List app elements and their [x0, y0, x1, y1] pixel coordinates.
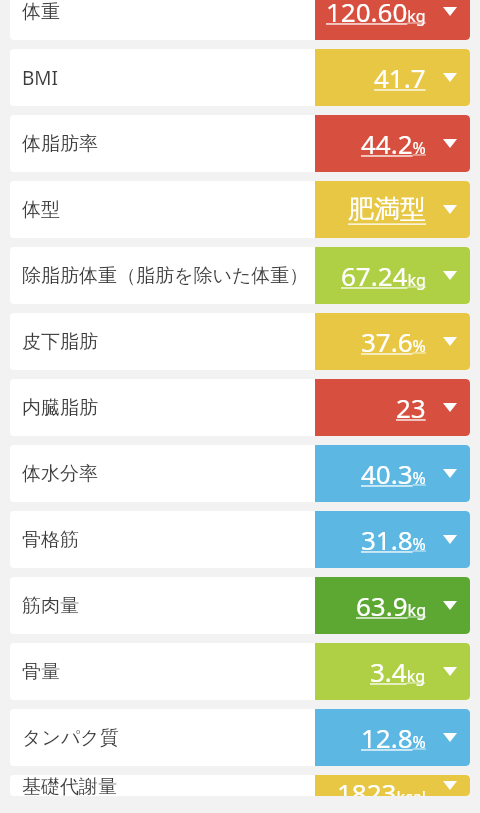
button[interactable]: Expand タンパク質 — [430, 709, 470, 766]
staticText: 内臓脂肪 — [22, 396, 98, 420]
button[interactable]: Expand 基礎代謝量 — [430, 775, 470, 796]
staticText: BMI — [22, 65, 59, 91]
staticText: 体重 — [22, 0, 60, 24]
staticText: 31.8% — [361, 522, 426, 557]
staticText: 44.2% — [361, 126, 426, 161]
staticText: 基礎代謝量 — [22, 775, 117, 796]
staticText: 120.60kg — [326, 0, 426, 29]
staticText: 除脂肪体重（脂肪を除いた体重） — [22, 264, 309, 288]
button[interactable]: 基礎代謝量 — [10, 775, 470, 796]
staticText: 筋肉量 — [22, 594, 79, 618]
staticText: 体脂肪率 — [22, 132, 98, 156]
button[interactable]: Expand 骨格筋 — [430, 511, 470, 568]
button[interactable]: Expand 体脂肪率 — [430, 115, 470, 172]
button[interactable]: Expand BMI — [430, 49, 470, 106]
staticText: 肥満型 — [348, 193, 426, 226]
staticText: 体型 — [22, 198, 60, 222]
staticText: 67.24kg — [341, 258, 426, 293]
staticText: 骨格筋 — [22, 528, 79, 552]
staticText: 皮下脂肪 — [22, 330, 98, 354]
staticText: 63.9kg — [356, 588, 426, 623]
staticText: タンパク質 — [22, 726, 119, 750]
button[interactable]: 骨量 — [10, 643, 470, 700]
button[interactable]: Expand 筋肉量 — [430, 577, 470, 634]
staticText: 骨量 — [22, 660, 60, 684]
button[interactable]: Expand 骨量 — [430, 643, 470, 700]
button[interactable]: 体型 — [10, 181, 470, 238]
button[interactable]: 骨格筋 — [10, 511, 470, 568]
staticText: 3.4kg — [370, 654, 426, 689]
button[interactable]: Expand 体重 — [430, 0, 470, 40]
button[interactable]: Expand 皮下脂肪 — [430, 313, 470, 370]
button[interactable]: Expand 体型 — [430, 181, 470, 238]
staticText: 1823kcal — [337, 775, 426, 796]
staticText: 12.8% — [361, 720, 426, 755]
staticText: 23 — [396, 390, 426, 425]
button[interactable]: Expand 内臓脂肪 — [430, 379, 470, 436]
button[interactable]: タンパク質 — [10, 709, 470, 766]
staticText: 37.6% — [361, 324, 426, 359]
button[interactable]: 皮下脂肪 — [10, 313, 470, 370]
button[interactable]: 筋肉量 — [10, 577, 470, 634]
button[interactable]: Expand 体水分率 — [430, 445, 470, 502]
staticText: 40.3% — [361, 456, 426, 491]
staticText: 41.7 — [374, 60, 426, 95]
staticText: 体水分率 — [22, 462, 98, 486]
button[interactable]: 除脂肪体重（脂肪を除いた体重） — [10, 247, 470, 304]
button[interactable]: Expand 除脂肪体重（脂肪を除いた体重） — [430, 247, 470, 304]
button[interactable]: 内臓脂肪 — [10, 379, 470, 436]
button[interactable]: 体脂肪率 — [10, 115, 470, 172]
button[interactable]: BMI — [10, 49, 470, 106]
button[interactable]: 体重 — [10, 0, 470, 40]
button[interactable]: 体水分率 — [10, 445, 470, 502]
